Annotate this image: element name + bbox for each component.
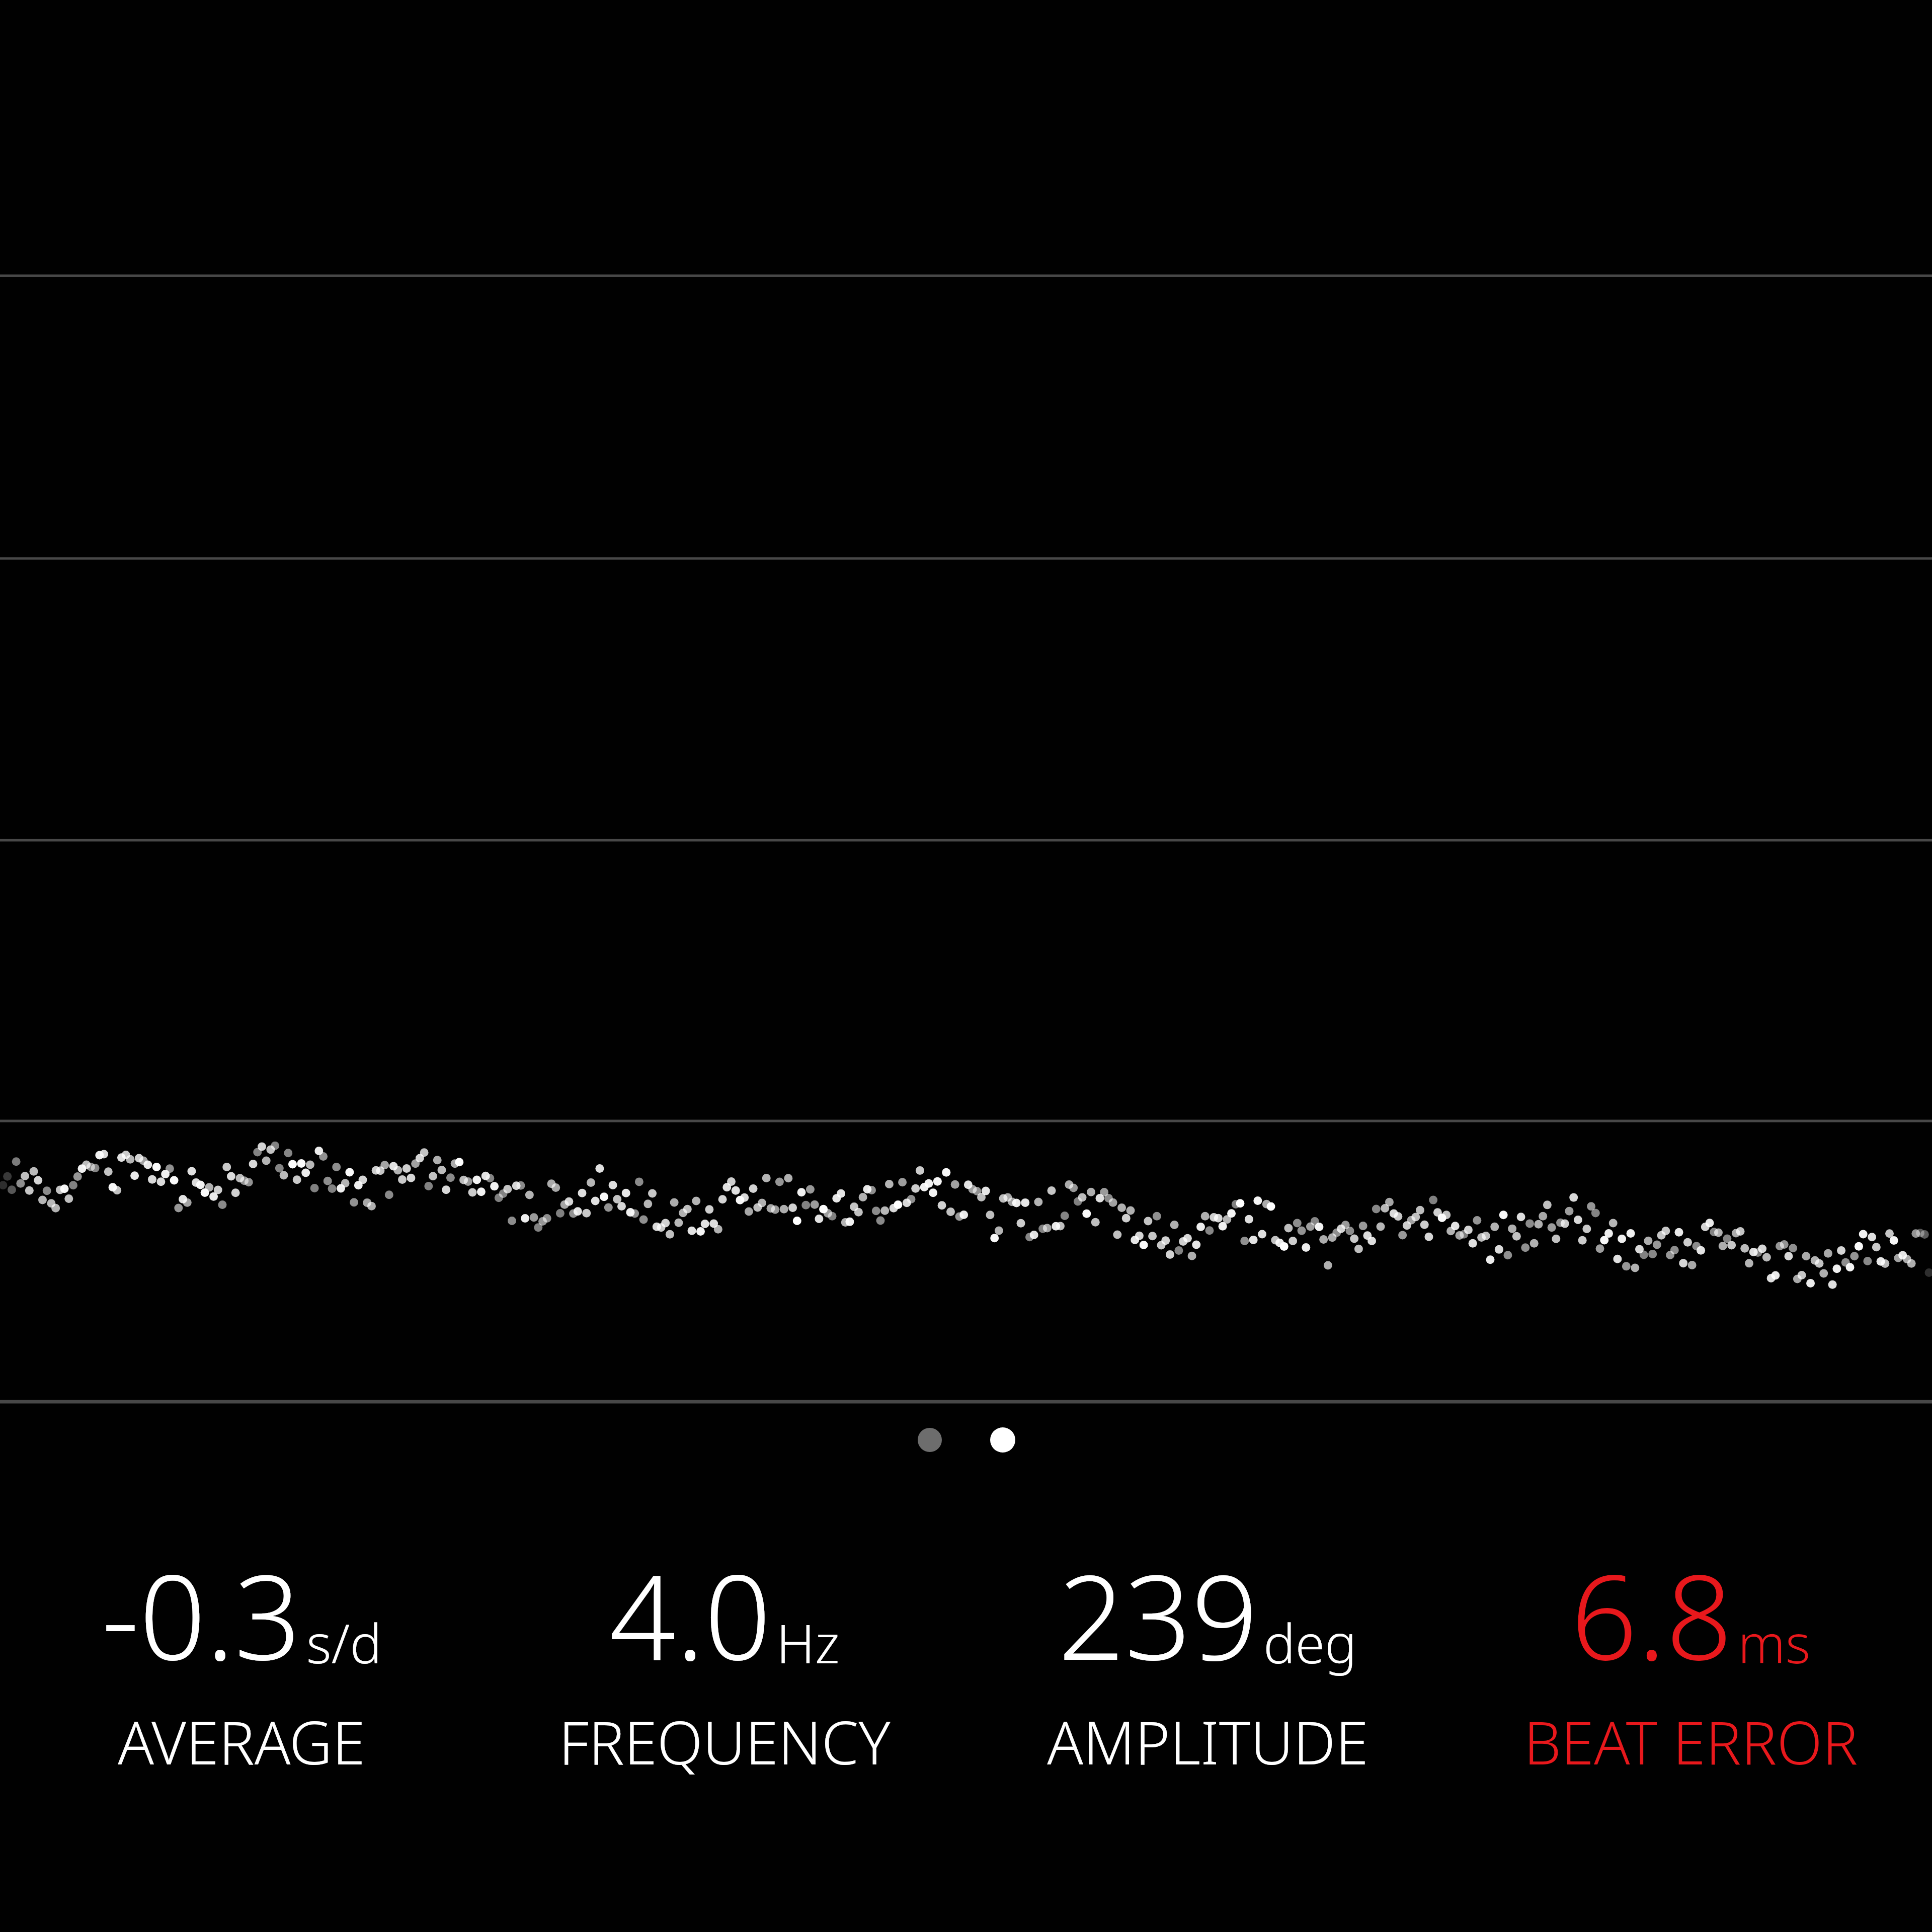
button[interactable]: -0.3 [0,1535,483,1782]
button[interactable]: 6.8 [1449,1535,1932,1782]
button[interactable]: 239 [966,1535,1449,1782]
staticText: s/d [306,1606,382,1679]
staticText: AVERAGE [118,1701,365,1782]
staticText: 239 [1058,1535,1258,1694]
staticText: 6.8 [1571,1535,1733,1694]
button[interactable]: 4.0 [483,1535,966,1782]
staticText: BEAT ERROR [1523,1701,1858,1782]
staticText: Hz [776,1606,840,1679]
other: Rate trace graph [0,0,1932,1932]
staticText: AMPLITUDE [1047,1701,1369,1782]
staticText: deg [1263,1606,1357,1679]
staticText: 4.0 [609,1535,771,1694]
staticText: FREQUENCY [558,1701,891,1782]
staticText: -0.3 [102,1535,301,1694]
staticText: ms [1738,1606,1811,1679]
